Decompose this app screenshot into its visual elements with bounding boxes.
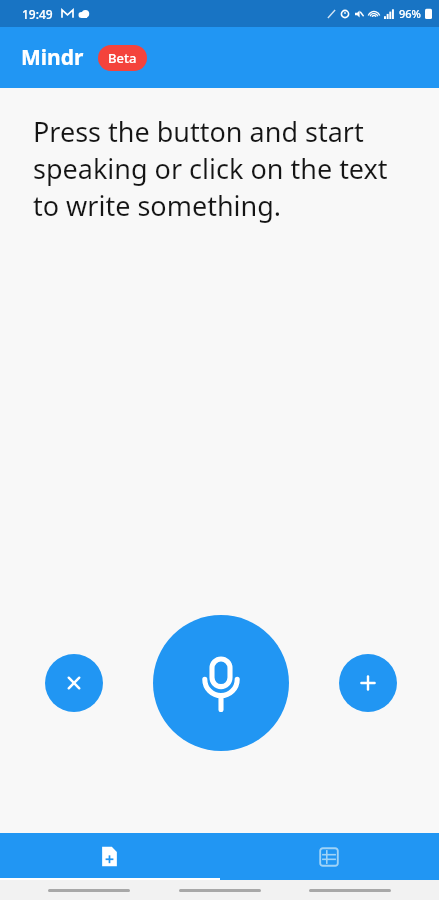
button[interactable]: Notes list <box>219 833 439 880</box>
button[interactable]: Beta <box>98 45 147 71</box>
button[interactable]: Press the button and start speaking or c… <box>33 113 415 224</box>
staticText: 96% <box>399 6 421 21</box>
button[interactable]: Add note <box>339 654 397 712</box>
button[interactable]: Clear <box>45 654 103 712</box>
button[interactable]: New note <box>0 833 219 880</box>
staticText: Mindr <box>21 43 84 72</box>
button[interactable]: Record voice <box>153 615 289 751</box>
staticText: 19:49 <box>22 6 53 22</box>
staticText: Beta <box>108 49 137 67</box>
